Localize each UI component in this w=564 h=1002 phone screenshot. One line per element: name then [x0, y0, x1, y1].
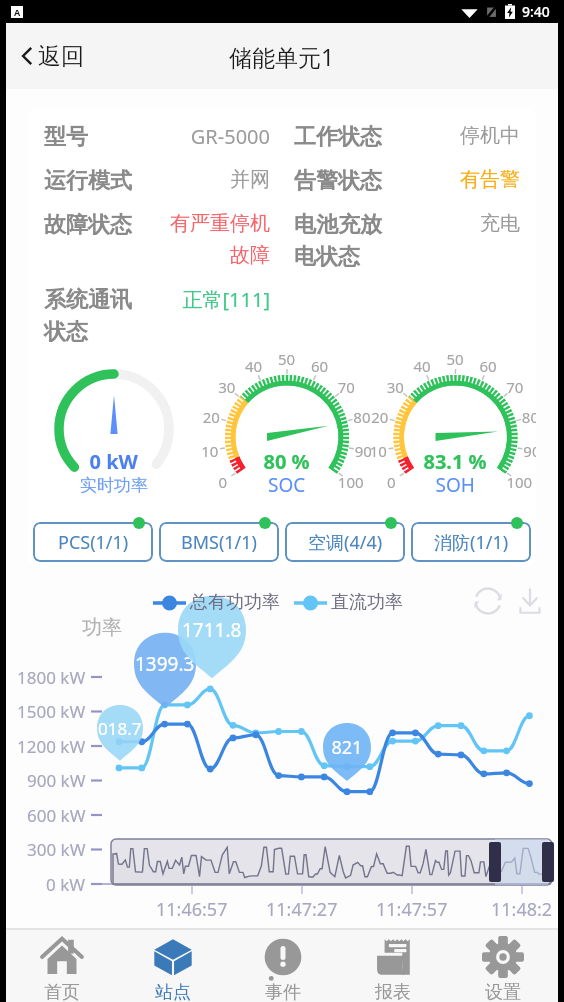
staticText: 有严重停机 故障 [160, 211, 270, 268]
staticText: BMS(1/1) [181, 530, 257, 555]
staticText: 消防(1/1) [434, 530, 509, 555]
button[interactable]: 消防(1/1) [411, 522, 531, 562]
staticText: 系统通讯 状态 [44, 286, 132, 345]
staticText: PCS(1/1) [58, 530, 129, 555]
staticText: 直流功率 [331, 591, 403, 614]
staticText: GR-5000 [160, 123, 270, 150]
staticText: 运行模式 [44, 167, 132, 195]
staticText: 故障状态 [44, 211, 132, 239]
button[interactable]: 报表 [338, 930, 448, 1002]
staticText: 并网 [160, 167, 270, 192]
staticText: 返回 [38, 42, 84, 71]
button[interactable]: Download [510, 581, 550, 621]
staticText: 报表 [375, 981, 411, 1002]
button[interactable]: 设置 [448, 930, 558, 1002]
staticText: 设置 [485, 981, 521, 1002]
staticText: 储能单元1 [229, 41, 335, 72]
button[interactable]: 事件 [228, 930, 338, 1002]
button[interactable]: 直流功率 [294, 591, 403, 614]
staticText: A [14, 6, 21, 18]
button[interactable]: 空调(4/4) [285, 522, 405, 562]
staticText: 电池充放 电状态 [294, 211, 382, 270]
button[interactable]: PCS(1/1) [33, 522, 153, 562]
button[interactable]: 总有功功率 [153, 591, 280, 614]
staticText: 型号 [44, 123, 88, 151]
button[interactable]: BMS(1/1) [159, 522, 279, 562]
staticText: 停机中 [415, 123, 520, 148]
staticText: 有告警 [415, 167, 520, 192]
staticText: 正常[111] [160, 286, 270, 313]
staticText: 空调(4/4) [308, 530, 383, 555]
staticText: 站点 [155, 981, 191, 1002]
button[interactable]: 站点 [117, 930, 228, 1002]
staticText: 事件 [265, 981, 301, 1002]
staticText: 告警状态 [294, 167, 382, 195]
button[interactable]: 首页 [6, 930, 117, 1002]
staticText: 首页 [44, 981, 80, 1002]
staticText: 9:40 [522, 2, 550, 21]
staticText: 工作状态 [294, 123, 382, 151]
button[interactable]: 返回 [6, 23, 94, 89]
staticText: 充电 [415, 211, 520, 236]
staticText: 总有功功率 [190, 591, 280, 614]
button[interactable]: Refresh [468, 581, 508, 621]
